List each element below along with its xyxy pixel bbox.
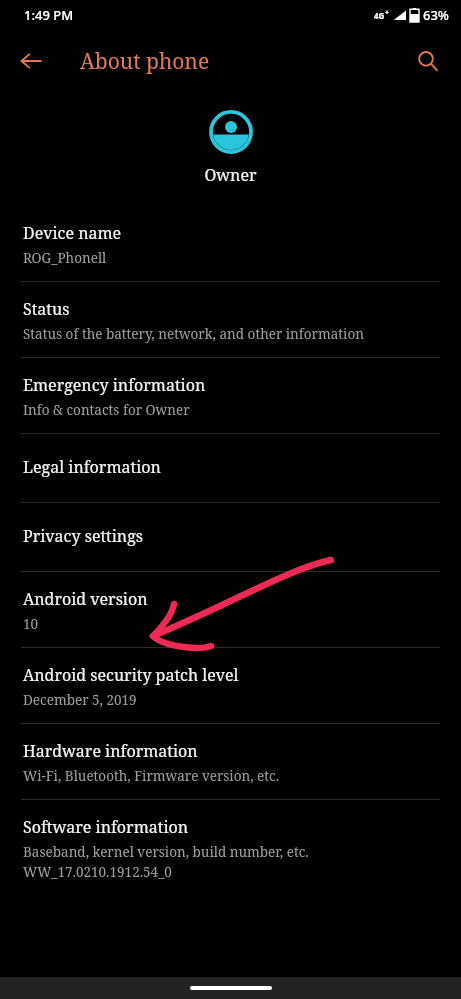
staticText: 10	[23, 615, 39, 633]
button[interactable]: Android security patch level	[0, 648, 461, 723]
button[interactable]: Privacy settings	[0, 503, 461, 571]
staticText: Android security patch level	[23, 664, 239, 686]
button[interactable]: Device name	[0, 210, 461, 281]
staticText: Software information	[23, 816, 189, 838]
button[interactable]: Owner	[0, 92, 461, 210]
staticText: About phone	[80, 47, 210, 76]
staticText: +	[385, 8, 390, 18]
staticText: Baseband, kernel version, build number, …	[23, 843, 309, 861]
button[interactable]: Back	[8, 38, 54, 84]
staticText: WW_17.0210.1912.54_0	[23, 863, 172, 881]
staticText: 4G	[374, 10, 385, 21]
staticText: Device name	[23, 222, 122, 244]
staticText: Emergency information	[23, 374, 206, 396]
staticText: December 5, 2019	[23, 691, 137, 709]
button[interactable]: Status	[0, 282, 461, 357]
button[interactable]: Emergency information	[0, 358, 461, 433]
staticText: 63%	[423, 6, 449, 24]
staticText: Owner	[204, 164, 257, 186]
staticText: ROG_Phonell	[23, 249, 107, 267]
staticText: Hardware information	[23, 740, 198, 762]
staticText: Privacy settings	[23, 525, 143, 547]
staticText: Wi-Fi, Bluetooth, Firmware version, etc.	[23, 767, 280, 785]
staticText: Info & contacts for Owner	[23, 401, 190, 419]
staticText: 1:49 PM	[24, 6, 74, 24]
staticText: Android version	[23, 588, 148, 610]
button[interactable]: Search	[405, 38, 451, 84]
button[interactable]: Legal information	[0, 434, 461, 502]
button[interactable]: Android version	[0, 572, 461, 647]
staticText: Status of the battery, network, and othe…	[23, 325, 364, 343]
button[interactable]: Software information	[0, 800, 461, 895]
staticText: Status	[23, 298, 70, 320]
staticText: Legal information	[23, 456, 161, 478]
button[interactable]: Hardware information	[0, 724, 461, 799]
